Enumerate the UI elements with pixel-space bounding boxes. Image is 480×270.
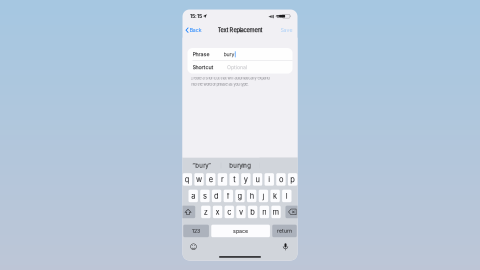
button[interactable]: a bbox=[188, 190, 198, 202]
staticText: bury bbox=[223, 51, 234, 57]
button[interactable]: Back bbox=[182, 23, 207, 38]
button[interactable]: o bbox=[276, 173, 286, 186]
staticText: c bbox=[227, 207, 231, 216]
button[interactable]: burying bbox=[221, 158, 259, 173]
button[interactable]: 123 bbox=[183, 225, 209, 237]
button[interactable]: q bbox=[183, 173, 192, 186]
staticText: i bbox=[268, 175, 270, 184]
staticText: u bbox=[255, 175, 259, 184]
staticText: burying bbox=[229, 162, 251, 169]
button[interactable]: “bury” bbox=[182, 158, 221, 173]
button[interactable]: b bbox=[248, 206, 257, 218]
button[interactable]: i bbox=[264, 173, 274, 186]
staticText: into the word or phrase as you type. bbox=[190, 82, 248, 87]
staticText: d bbox=[214, 191, 219, 200]
button[interactable]: x bbox=[213, 206, 222, 218]
staticText: s bbox=[203, 191, 207, 200]
button[interactable]: e bbox=[206, 173, 215, 186]
staticText: b bbox=[250, 207, 255, 216]
button[interactable]: return bbox=[272, 225, 297, 237]
staticText: r bbox=[221, 175, 224, 184]
button[interactable]: l bbox=[282, 190, 291, 202]
button[interactable]: c bbox=[224, 206, 234, 218]
staticText: w bbox=[196, 175, 202, 184]
staticText: return bbox=[277, 228, 292, 234]
staticText: Back bbox=[190, 27, 202, 33]
button[interactable]: w bbox=[194, 173, 204, 186]
staticText: 123 bbox=[192, 228, 200, 234]
button[interactable]: r bbox=[218, 173, 227, 186]
staticText: “bury” bbox=[192, 162, 211, 169]
button[interactable]: Save bbox=[275, 23, 297, 38]
button[interactable]: f bbox=[224, 190, 233, 202]
button[interactable]: Dictation bbox=[279, 241, 291, 252]
staticText: j bbox=[262, 191, 264, 200]
staticText: q bbox=[185, 175, 190, 184]
staticText: t bbox=[233, 175, 235, 184]
staticText: v bbox=[239, 207, 243, 216]
button[interactable]: m bbox=[271, 206, 281, 218]
button[interactable]: t bbox=[229, 173, 239, 186]
button[interactable]: Emoji keyboard bbox=[187, 241, 199, 252]
staticText: x bbox=[215, 207, 219, 216]
staticText: f bbox=[227, 191, 230, 200]
staticText: p bbox=[290, 175, 295, 184]
button[interactable]: k bbox=[270, 190, 280, 202]
staticText: e bbox=[209, 175, 213, 184]
staticText: Optional bbox=[227, 64, 247, 70]
button[interactable]: z bbox=[201, 206, 210, 218]
staticText: y bbox=[244, 175, 248, 184]
button[interactable]: Shortcut bbox=[187, 61, 292, 74]
button[interactable]: y bbox=[241, 173, 250, 186]
button[interactable]: Delete bbox=[285, 206, 299, 218]
button[interactable]: u bbox=[253, 173, 262, 186]
button[interactable]: g bbox=[235, 190, 245, 202]
staticText: z bbox=[204, 207, 208, 216]
button[interactable]: j bbox=[259, 190, 268, 202]
staticText: Phrase bbox=[192, 51, 209, 57]
staticText: Text Replacement bbox=[217, 27, 262, 34]
staticText: m bbox=[273, 207, 280, 216]
staticText: space bbox=[233, 228, 248, 234]
staticText: k bbox=[273, 191, 277, 200]
staticText: l bbox=[286, 191, 288, 200]
staticText: n bbox=[262, 207, 266, 216]
button[interactable]: h bbox=[247, 190, 256, 202]
button[interactable]: p bbox=[288, 173, 297, 186]
staticText: Shortcut bbox=[192, 64, 213, 70]
button[interactable]: Shift bbox=[181, 206, 195, 218]
staticText: o bbox=[279, 175, 283, 184]
staticText: 15:15 bbox=[190, 13, 202, 19]
button[interactable]: s bbox=[200, 190, 210, 202]
button[interactable]: space bbox=[211, 225, 270, 237]
button[interactable]: n bbox=[260, 206, 269, 218]
staticText: h bbox=[250, 191, 254, 200]
button[interactable]: v bbox=[236, 206, 246, 218]
staticText: g bbox=[237, 191, 242, 200]
staticText: Create a shortcut that will automaticall… bbox=[190, 76, 269, 80]
button[interactable]: d bbox=[212, 190, 221, 202]
staticText: Save bbox=[280, 27, 292, 33]
staticText: a bbox=[191, 191, 195, 200]
button[interactable]: Phrase bbox=[187, 48, 292, 61]
